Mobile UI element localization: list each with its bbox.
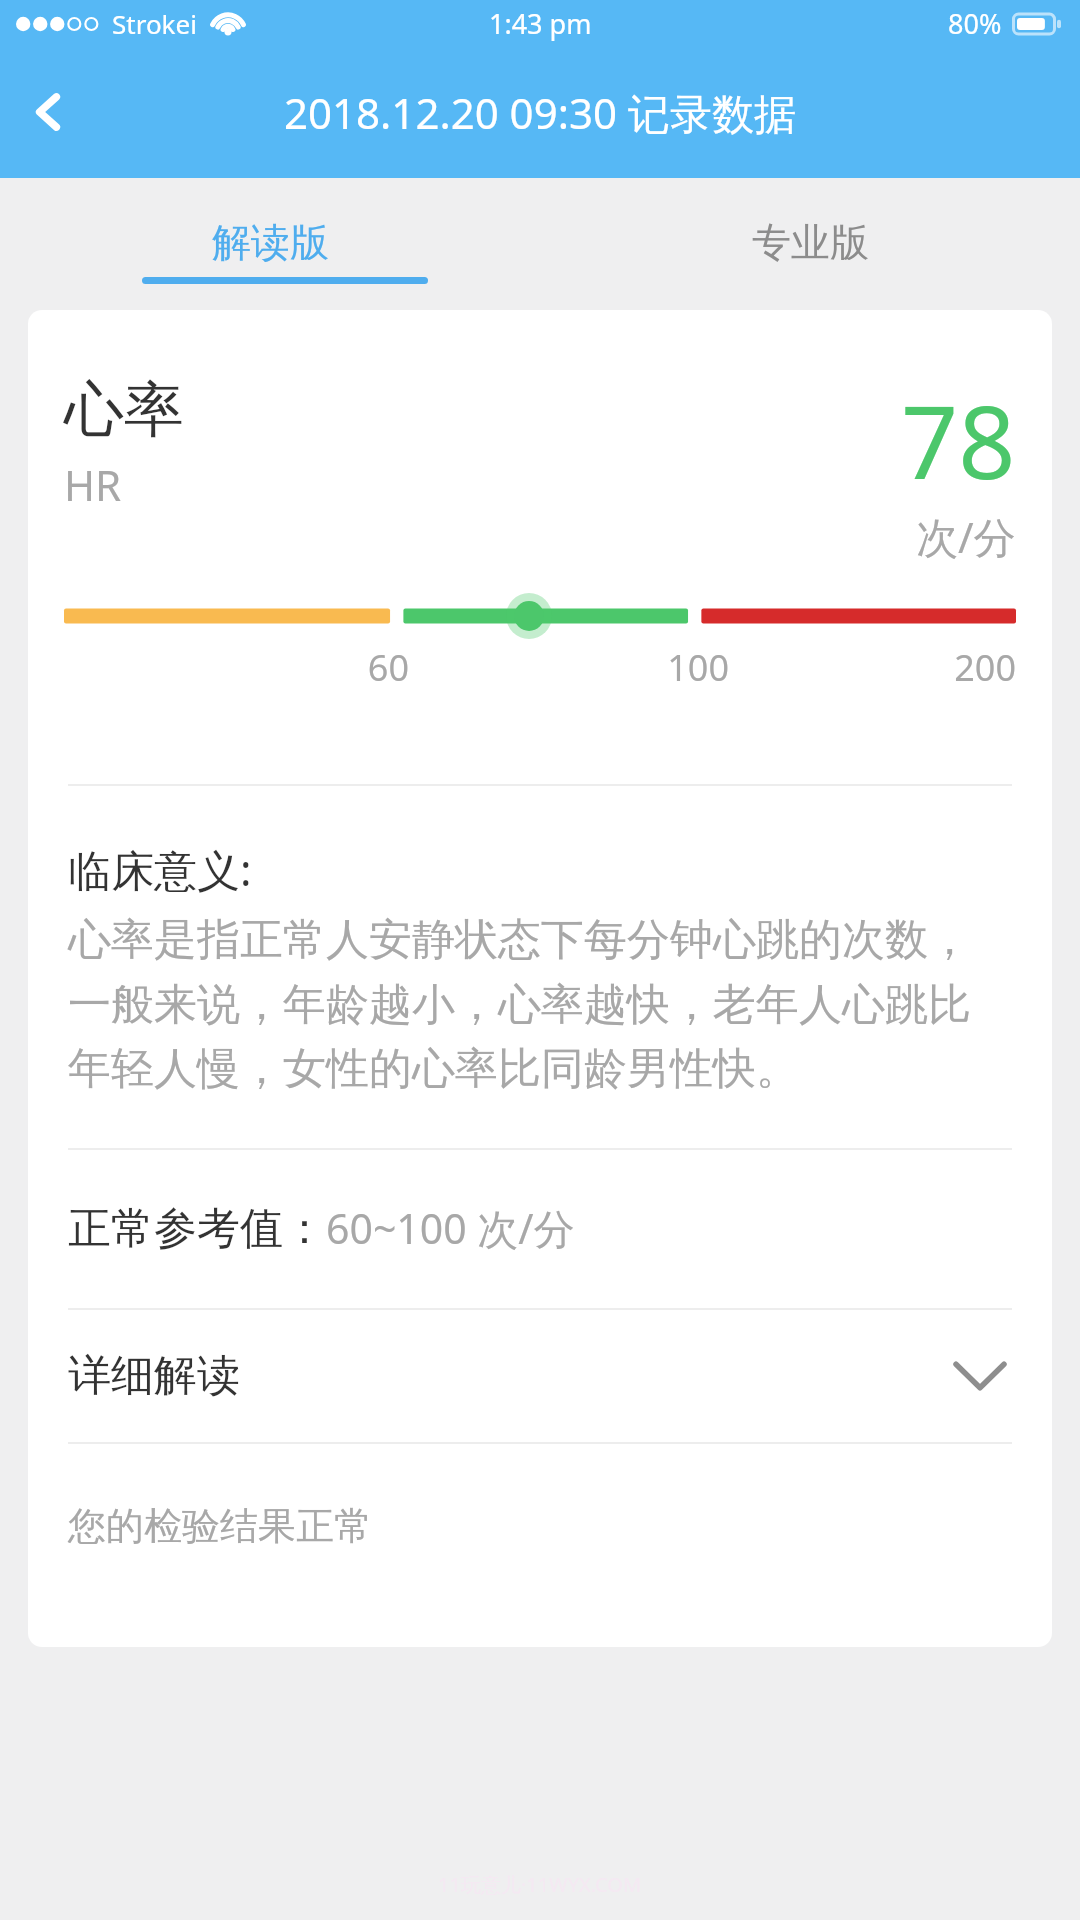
staticText: Strokei <box>112 6 197 41</box>
staticText: 专业版 <box>752 218 869 267</box>
staticText: 正常参考值： <box>68 1202 326 1256</box>
staticText: 次/分 <box>916 508 1016 565</box>
staticText: 200 <box>64 643 1016 692</box>
staticText: 心率是指正常人安静状态下每分钟心跳的次数， 一般来说，年龄越小，心率越快，老年人… <box>68 913 971 1096</box>
staticText: 您的检验结果正常 <box>68 1502 372 1550</box>
staticText: 100 <box>64 643 729 692</box>
staticText: 详细解读 <box>68 1349 240 1403</box>
staticText: 临床意义: <box>68 840 252 899</box>
staticText: 80% <box>948 5 1002 42</box>
staticText: 解读版 <box>212 218 329 267</box>
staticText: 78 <box>901 372 1016 508</box>
staticText: HR <box>64 456 122 513</box>
staticText: 60~100 次/分 <box>326 1200 575 1256</box>
button[interactable]: Back <box>0 64 96 160</box>
staticText: 60 <box>64 643 409 692</box>
button[interactable]: 解读版 <box>0 178 540 306</box>
button[interactable]: 专业版 <box>540 178 1080 306</box>
staticText: 心率 <box>64 372 184 448</box>
staticText: 1:43 pm <box>489 5 592 42</box>
staticText: 2018.12.20 09:30 记录数据 <box>284 84 796 141</box>
button[interactable]: 详细解读 <box>28 1310 1052 1442</box>
